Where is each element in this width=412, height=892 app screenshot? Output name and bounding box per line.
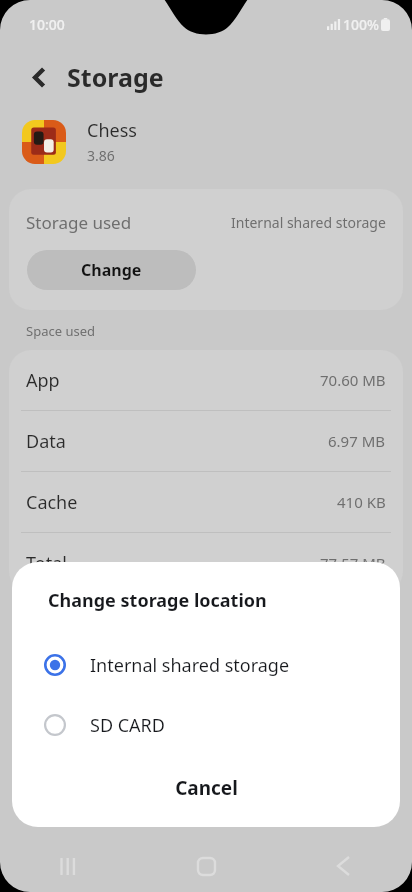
button[interactable]: Total — [9, 533, 403, 593]
staticText: Space used — [26, 322, 95, 340]
staticText: 70.60 MB — [320, 370, 386, 390]
staticText: Cancel — [175, 775, 238, 801]
staticText: 3.86 — [87, 146, 115, 165]
staticText: 77.57 MB — [320, 553, 386, 573]
staticText: Clear data — [65, 808, 142, 830]
staticText: Change storage location — [48, 588, 267, 613]
staticText: Storage — [67, 60, 164, 94]
button[interactable]: Recents — [0, 840, 138, 892]
button[interactable]: Back — [275, 840, 412, 892]
staticText: Internal shared storage — [90, 653, 290, 678]
staticText: Clear cache — [266, 808, 353, 830]
staticText: Chess — [87, 118, 137, 143]
button[interactable]: Data — [9, 411, 403, 471]
staticText: 410 KB — [337, 492, 386, 512]
staticText: 6.97 MB — [328, 431, 386, 451]
button[interactable]: App — [9, 350, 403, 410]
staticText: App — [26, 368, 60, 393]
button[interactable]: Back — [22, 59, 58, 95]
button[interactable]: Clear cache — [206, 798, 412, 840]
staticText: SD CARD — [90, 713, 165, 738]
button[interactable]: SD CARD — [12, 695, 400, 755]
staticText: Total — [26, 551, 67, 576]
button[interactable]: Clear data — [0, 798, 206, 840]
button[interactable]: Cancel — [12, 761, 400, 815]
staticText: 10:00 — [29, 15, 65, 34]
staticText: Internal shared storage — [231, 213, 386, 232]
staticText: Change — [81, 259, 142, 281]
button[interactable]: Internal shared storage — [12, 635, 400, 695]
staticText: Storage used — [26, 211, 132, 234]
staticText: 100% — [343, 15, 379, 34]
button[interactable]: Change — [27, 250, 196, 290]
button[interactable]: Cache — [9, 472, 403, 532]
staticText: Cache — [26, 490, 78, 515]
staticText: Data — [26, 429, 66, 454]
